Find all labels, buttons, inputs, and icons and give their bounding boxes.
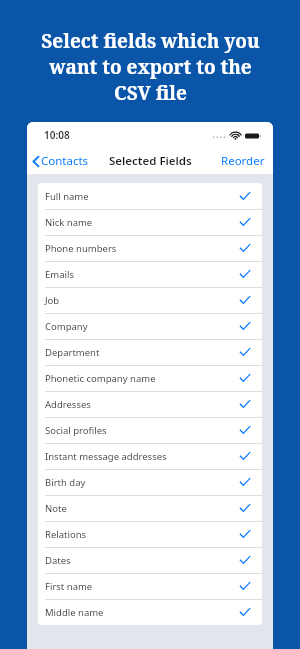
staticText: CSV file [114, 80, 187, 106]
button[interactable]: Instant message addresses [38, 443, 262, 469]
button[interactable]: Company [38, 313, 262, 339]
button[interactable]: Social profiles [38, 417, 262, 443]
staticText: First name [45, 580, 93, 593]
staticText: Middle name [45, 606, 104, 619]
staticText: 10:08 [44, 128, 70, 142]
staticText: Department [45, 346, 100, 359]
staticText: Instant message addresses [45, 450, 167, 463]
staticText: Contacts [41, 153, 89, 169]
staticText: Job [45, 294, 60, 307]
button[interactable]: Full name [38, 183, 262, 209]
staticText: Nick name [45, 216, 93, 229]
button[interactable]: Addresses [38, 391, 262, 417]
staticText: Phone numbers [45, 242, 117, 255]
staticText: Reorder [221, 153, 265, 169]
button[interactable]: Emails [38, 261, 262, 287]
button[interactable]: Birth day [38, 469, 262, 495]
button[interactable]: Phone numbers [38, 235, 262, 261]
button[interactable]: First name [38, 573, 262, 599]
staticText: want to export to the [49, 54, 252, 80]
button[interactable]: Job [38, 287, 262, 313]
button[interactable]: Contacts [27, 150, 95, 172]
staticText: Full name [45, 190, 89, 203]
button[interactable]: Nick name [38, 209, 262, 235]
staticText: Emails [45, 268, 74, 281]
button[interactable]: Relations [38, 521, 262, 547]
button[interactable]: Phonetic company name [38, 365, 262, 391]
staticText: Selected Fields [109, 153, 192, 169]
button[interactable]: Note [38, 495, 262, 521]
staticText: Social profiles [45, 424, 107, 437]
staticText: Addresses [45, 398, 91, 411]
button[interactable]: Reorder [213, 150, 273, 172]
staticText: Dates [45, 554, 71, 567]
button[interactable]: Middle name [38, 599, 262, 625]
staticText: Select fields which you [41, 28, 260, 54]
staticText: Note [45, 502, 67, 515]
staticText: Phonetic company name [45, 372, 156, 385]
staticText: Relations [45, 528, 87, 541]
button[interactable]: Department [38, 339, 262, 365]
staticText: Birth day [45, 476, 86, 489]
staticText: Company [45, 320, 88, 333]
button[interactable]: Dates [38, 547, 262, 573]
